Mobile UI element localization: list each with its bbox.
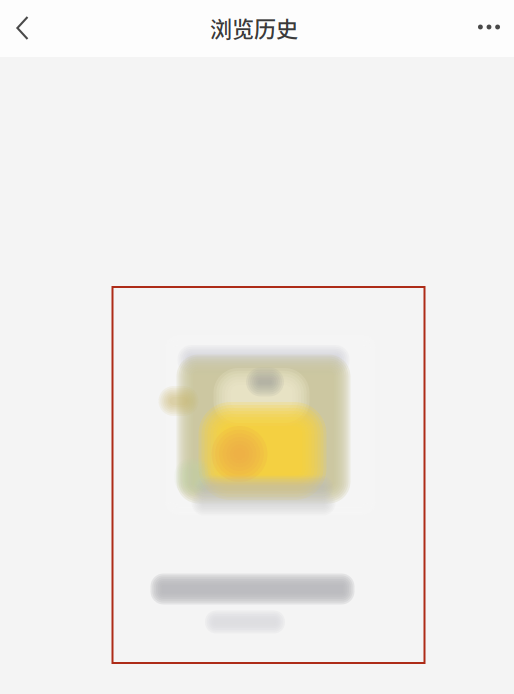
button[interactable]: Back (0, 5, 45, 50)
button[interactable]: More options (469, 5, 514, 50)
staticText: 浏览历史 (210, 11, 298, 43)
button[interactable] (112, 287, 424, 663)
